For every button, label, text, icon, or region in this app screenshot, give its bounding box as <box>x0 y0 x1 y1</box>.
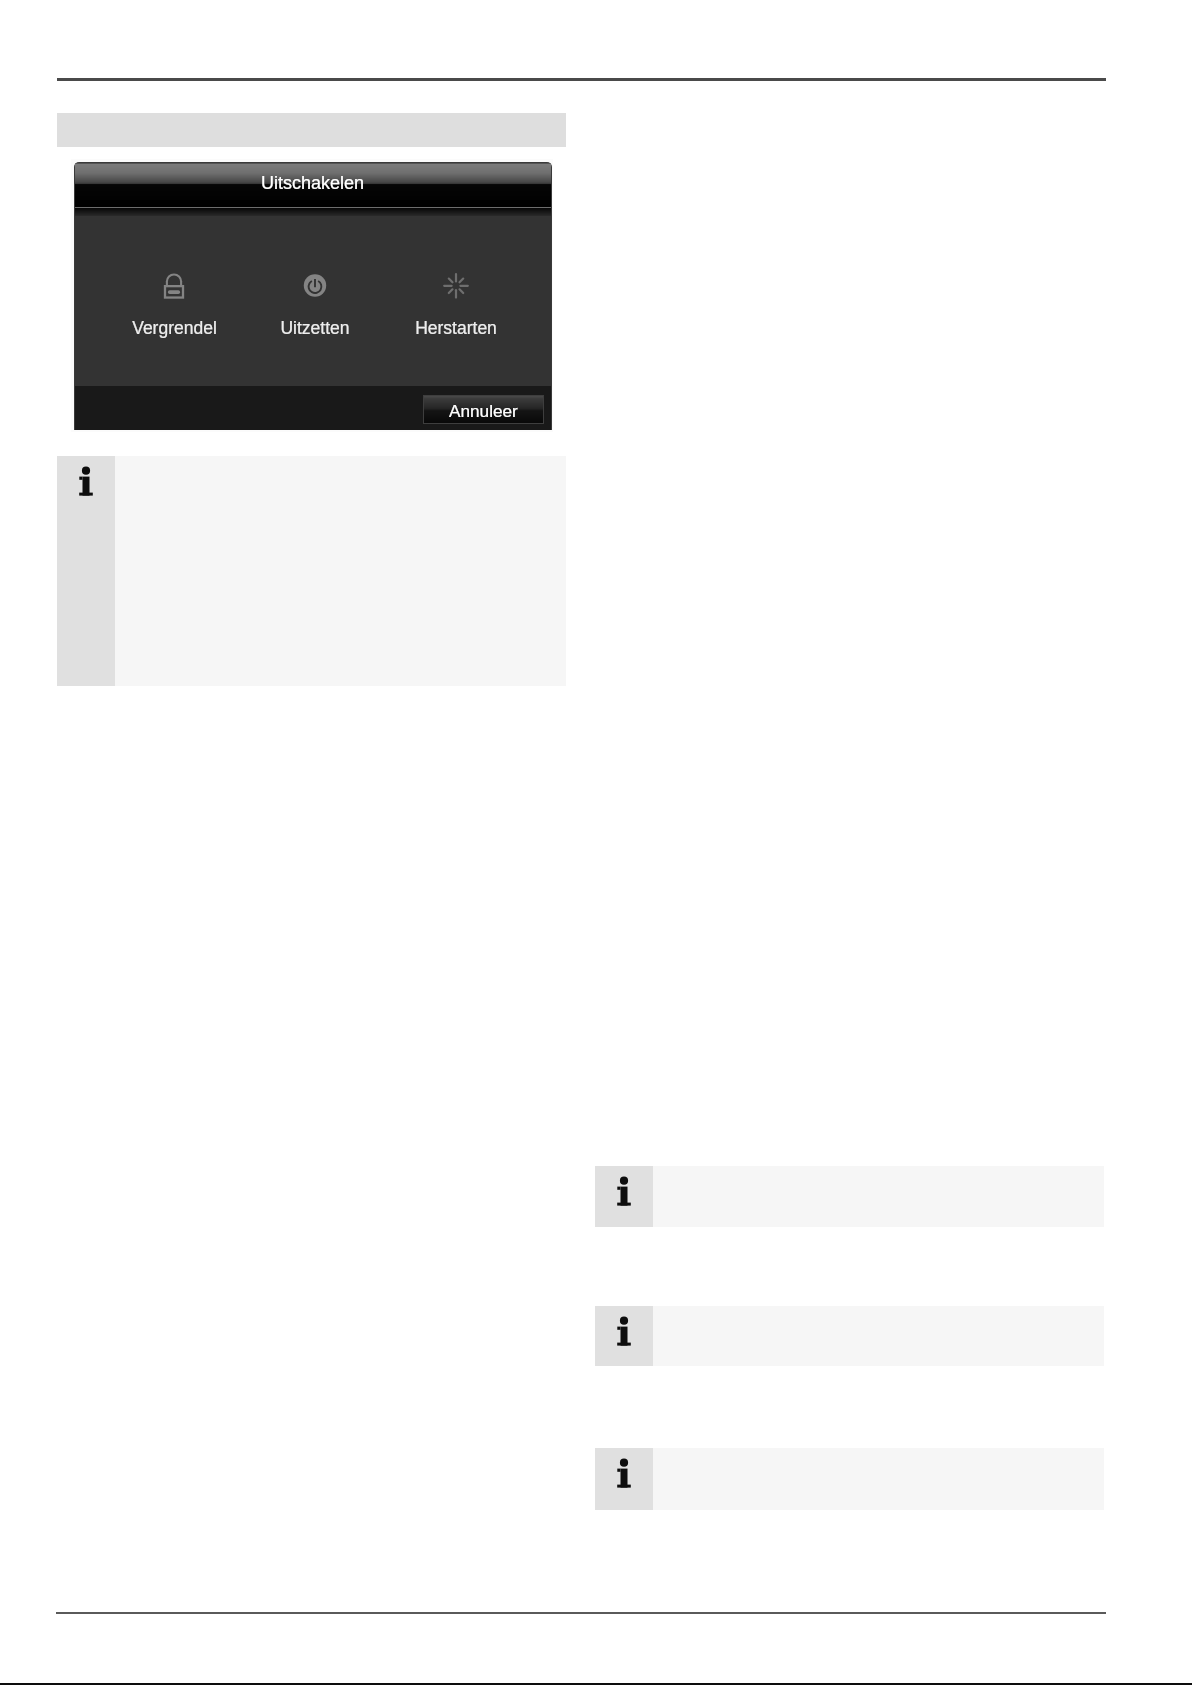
other: Power off <box>301 273 329 301</box>
other: Note <box>615 1315 633 1347</box>
other: Note <box>615 1457 633 1489</box>
staticText: Herstarten <box>415 318 497 338</box>
button[interactable]: Annuleer <box>424 396 543 423</box>
staticText: Vergrendel <box>132 318 217 338</box>
other: Lock <box>160 273 188 301</box>
other: Restart <box>442 273 470 301</box>
staticText: Annuleer <box>449 401 518 420</box>
other: Note <box>77 465 95 497</box>
other: Note <box>615 1175 633 1207</box>
staticText: Uitschakelen <box>261 173 365 193</box>
staticText: Uitzetten <box>280 318 350 338</box>
button[interactable]: Power off <box>265 266 365 342</box>
button[interactable]: Restart <box>406 266 506 342</box>
button[interactable]: Lock <box>124 266 224 342</box>
